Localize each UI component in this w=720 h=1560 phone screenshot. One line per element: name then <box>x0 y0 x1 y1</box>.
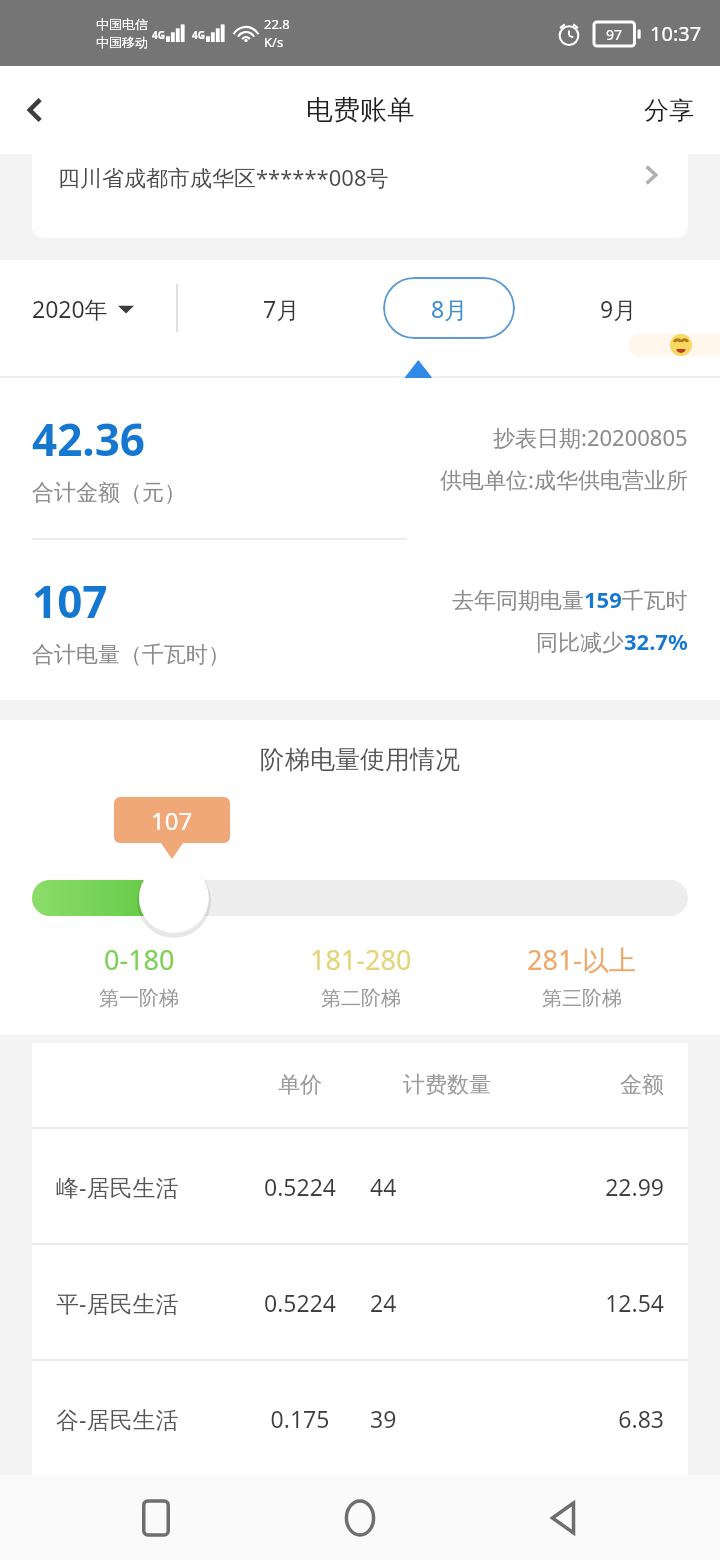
staticText: 22.8 <box>264 15 290 33</box>
staticText: 107 <box>151 804 193 837</box>
staticText: 同比减少32.7% <box>536 626 688 656</box>
staticText: 电费账单 <box>306 93 414 127</box>
staticText: 22.99 <box>524 1171 664 1202</box>
staticText: 中国移动 <box>96 34 148 50</box>
staticText: 单价 <box>230 1071 370 1099</box>
button[interactable]: 平-居民生活 <box>32 1245 688 1359</box>
button[interactable]: Recents <box>108 1475 204 1560</box>
staticText: 44 <box>370 1171 524 1202</box>
staticText: 24 <box>370 1287 524 1318</box>
staticText: 四川省成都市成华区******008号 <box>58 162 389 192</box>
button[interactable]: 点个赞 <box>628 334 720 356</box>
staticText: 计费数量 <box>370 1071 524 1099</box>
button[interactable]: 7月 <box>215 277 347 339</box>
staticText: 0.5224 <box>230 1287 370 1318</box>
staticText: 10:37 <box>650 20 702 47</box>
staticText: 0-180 <box>104 941 175 978</box>
staticText: 第三阶梯 <box>542 986 622 1011</box>
staticText: 0.175 <box>230 1403 370 1434</box>
button[interactable]: Home <box>312 1475 408 1560</box>
button[interactable]: 峰-居民生活 <box>32 1129 688 1243</box>
button[interactable]: 2020年 <box>0 293 176 324</box>
staticText: 4G <box>192 28 205 42</box>
staticText: 42.36 <box>32 409 146 469</box>
staticText: 分享 <box>644 95 694 126</box>
staticText: 8月 <box>431 293 468 324</box>
staticText: 7月 <box>263 293 300 324</box>
button[interactable]: 8月 <box>383 277 515 339</box>
staticText: 第二阶梯 <box>321 986 401 1011</box>
staticText: 4G <box>152 28 165 42</box>
staticText: 6.83 <box>524 1403 664 1434</box>
button[interactable]: 9月 <box>552 277 684 339</box>
button[interactable]: Back <box>0 74 72 146</box>
staticText: 去年同期电量159千瓦时 <box>452 584 688 614</box>
staticText: 12.54 <box>524 1287 664 1318</box>
staticText: 合计电量（千瓦时） <box>32 641 230 669</box>
staticText: 峰-居民生活 <box>56 1171 230 1202</box>
staticText: 2020年 <box>32 293 108 324</box>
staticText: 中国电信 <box>96 16 148 32</box>
staticText: 金额 <box>524 1071 664 1099</box>
staticText: K/s <box>264 33 284 51</box>
button[interactable]: 谷-居民生活 <box>32 1361 688 1475</box>
staticText: 97 <box>606 25 623 44</box>
staticText: 39 <box>370 1403 524 1434</box>
staticText: 107 <box>32 571 108 631</box>
button[interactable]: 分享 <box>618 79 720 142</box>
staticText: 抄表日期:20200805 <box>493 422 688 452</box>
staticText: 0.5224 <box>230 1171 370 1202</box>
staticText: 供电单位:成华供电营业所 <box>440 464 688 494</box>
button[interactable]: Back <box>516 1475 612 1560</box>
staticText: 阶梯电量使用情况 <box>260 744 460 775</box>
staticText: 平-居民生活 <box>56 1287 230 1318</box>
staticText: 第一阶梯 <box>99 986 179 1011</box>
staticText: 281-以上 <box>527 941 637 978</box>
staticText: 谷-居民生活 <box>56 1403 230 1434</box>
button[interactable]: 四川省成都市成华区******008号 <box>32 154 688 238</box>
staticText: 合计金额（元） <box>32 479 186 507</box>
staticText: 9月 <box>600 293 637 324</box>
staticText: 181-280 <box>310 941 412 978</box>
